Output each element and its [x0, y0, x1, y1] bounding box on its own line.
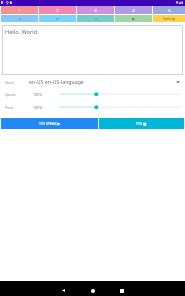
button[interactable]: TTS ■	[99, 118, 184, 129]
staticText: Voice	[5, 80, 14, 85]
button[interactable]: 5	[153, 6, 185, 14]
staticText: Setting	[163, 16, 175, 21]
button[interactable]: a	[1, 15, 38, 22]
button[interactable]: 4	[115, 6, 152, 14]
staticText: Pitch	[5, 105, 14, 110]
staticText: ▶	[132, 17, 135, 21]
button[interactable]: 1	[1, 6, 38, 14]
staticText: Speed	[5, 92, 16, 97]
staticText: TTS SPEAK ▶	[39, 121, 61, 126]
staticText: TTS ■	[136, 121, 147, 126]
button[interactable]: Home	[78, 281, 108, 296]
staticText: 100%	[33, 92, 43, 97]
staticText: en-US en-US-language	[29, 78, 84, 85]
button[interactable]	[60, 101, 181, 114]
staticText: 1	[18, 8, 21, 13]
button[interactable]: Voice	[0, 75, 185, 88]
button[interactable]: Recents	[107, 281, 137, 296]
staticText: b	[56, 16, 59, 21]
staticText: 5	[168, 8, 171, 13]
button[interactable]: 3	[77, 6, 114, 14]
button[interactable]: TTS SPEAK ▶	[1, 118, 98, 129]
button[interactable]	[60, 88, 181, 101]
staticText: 100%	[33, 105, 43, 110]
staticText: 3	[94, 8, 97, 13]
button[interactable]: ▶	[115, 15, 152, 22]
staticText: a	[19, 16, 21, 21]
button[interactable]: Back	[48, 281, 78, 296]
staticText: Hello, World.	[5, 28, 39, 36]
staticText: c	[95, 16, 97, 21]
staticText: 2	[56, 8, 59, 13]
button[interactable]: Hello, World.	[2, 25, 183, 75]
staticText: 4	[132, 8, 135, 13]
button[interactable]: b	[39, 15, 76, 22]
button[interactable]: Setting	[153, 15, 185, 22]
button[interactable]: 2	[39, 6, 76, 14]
